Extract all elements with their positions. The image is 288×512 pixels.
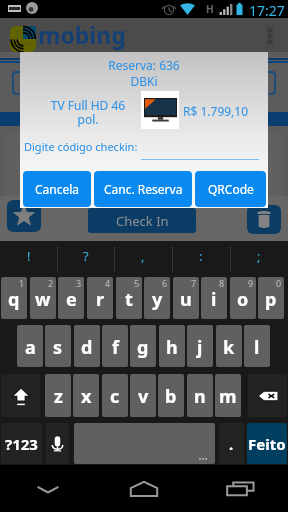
staticText: Feito bbox=[248, 434, 286, 454]
button[interactable]: m bbox=[215, 374, 241, 417]
button[interactable]: q bbox=[1, 277, 27, 319]
staticText: g bbox=[137, 335, 149, 360]
button[interactable]: a bbox=[17, 325, 43, 367]
button[interactable]: QRCode bbox=[195, 171, 266, 207]
staticText: Reserva: 636 bbox=[20, 57, 268, 73]
staticText: H bbox=[206, 2, 214, 16]
staticText: 0 bbox=[276, 277, 282, 289]
staticText: , bbox=[141, 247, 145, 265]
staticText: 7 bbox=[191, 277, 197, 289]
button[interactable]: Back bbox=[0, 465, 96, 512]
button[interactable]: : bbox=[172, 241, 230, 276]
button[interactable]: o bbox=[230, 277, 256, 319]
staticText: 8 bbox=[219, 277, 225, 289]
button[interactable]: Backspace bbox=[248, 374, 287, 417]
button[interactable]: h bbox=[159, 325, 185, 367]
staticText: i bbox=[211, 287, 217, 312]
staticText: ? bbox=[83, 247, 89, 265]
staticText: Check In bbox=[116, 212, 169, 230]
button[interactable]: l bbox=[244, 325, 270, 367]
button[interactable]: Check In bbox=[88, 208, 196, 233]
button[interactable]: c bbox=[102, 374, 128, 417]
button[interactable]: Favorite bbox=[7, 200, 41, 232]
button[interactable]: ? bbox=[57, 241, 114, 276]
button[interactable]: mobing bbox=[10, 20, 126, 51]
button[interactable]: n bbox=[187, 374, 213, 417]
staticText: b bbox=[165, 384, 177, 409]
button[interactable]: z bbox=[45, 374, 71, 417]
staticText: v bbox=[138, 384, 149, 409]
button[interactable]: Recent apps bbox=[192, 465, 288, 512]
button[interactable]: v bbox=[130, 374, 156, 417]
button[interactable]: Canc. Reserva bbox=[94, 171, 192, 207]
button[interactable]: j bbox=[187, 325, 213, 367]
staticText: q bbox=[8, 287, 20, 312]
staticText: QRCode bbox=[208, 181, 254, 197]
button[interactable]: Shift bbox=[1, 374, 40, 417]
staticText: : bbox=[199, 247, 203, 265]
staticText: d bbox=[81, 335, 93, 360]
staticText: TV Full HD 46 pol. bbox=[28, 97, 148, 128]
button[interactable]: t bbox=[116, 277, 142, 319]
button[interactable]: Voice input bbox=[46, 423, 69, 464]
button[interactable]: Cancela bbox=[23, 171, 91, 207]
staticText: f bbox=[112, 335, 119, 360]
staticText: 1 bbox=[19, 277, 25, 289]
button[interactable]: f bbox=[102, 325, 128, 367]
staticText: m bbox=[219, 384, 237, 409]
staticText: c bbox=[110, 384, 120, 409]
button[interactable]: p bbox=[258, 277, 284, 319]
staticText: w bbox=[35, 287, 51, 312]
button[interactable]: Feito bbox=[247, 423, 287, 464]
button[interactable]: w bbox=[30, 277, 56, 319]
button[interactable]: ?123 bbox=[1, 423, 42, 464]
button[interactable]: g bbox=[130, 325, 156, 367]
button[interactable]: b bbox=[158, 374, 184, 417]
staticText: r bbox=[96, 287, 105, 312]
button[interactable]: Space bbox=[74, 423, 215, 464]
staticText: Digite código checkin: bbox=[24, 139, 138, 154]
staticText: p bbox=[265, 287, 277, 312]
button[interactable]: Home bbox=[96, 465, 192, 512]
staticText: t bbox=[125, 287, 133, 312]
staticText: selecionar oferta bbox=[55, 112, 142, 126]
staticText: e bbox=[66, 287, 77, 312]
button[interactable]: More options bbox=[266, 26, 274, 44]
staticText: . bbox=[229, 434, 234, 454]
button[interactable]: , bbox=[114, 241, 172, 276]
staticText: o bbox=[237, 287, 249, 312]
staticText: 4 bbox=[105, 277, 111, 289]
staticText: 2 bbox=[48, 277, 54, 289]
staticText: ! bbox=[27, 247, 31, 265]
button[interactable]: x bbox=[73, 374, 99, 417]
button[interactable]: . bbox=[219, 423, 244, 464]
staticText: 6 bbox=[162, 277, 168, 289]
button[interactable]: Delete bbox=[247, 205, 281, 234]
staticText: n bbox=[194, 384, 206, 409]
staticText: 3 bbox=[76, 277, 82, 289]
staticText: DBKi bbox=[20, 73, 268, 89]
staticText: ?123 bbox=[5, 434, 38, 454]
staticText: a bbox=[25, 335, 36, 360]
staticText: 17:27 bbox=[249, 1, 285, 19]
button[interactable]: d bbox=[74, 325, 100, 367]
button[interactable]: i bbox=[201, 277, 227, 319]
staticText: R$ 1.799,10 bbox=[183, 103, 249, 119]
staticText: u bbox=[180, 287, 192, 312]
button[interactable]: e bbox=[58, 277, 84, 319]
staticText: Canc. Reserva bbox=[104, 181, 183, 197]
button[interactable]: s bbox=[45, 325, 71, 367]
button[interactable]: r bbox=[87, 277, 113, 319]
staticText: j bbox=[197, 335, 203, 360]
staticText: ; bbox=[257, 247, 261, 265]
button[interactable]: u bbox=[173, 277, 199, 319]
staticText: 5 bbox=[134, 277, 140, 289]
staticText: l bbox=[254, 335, 260, 360]
button[interactable]: ! bbox=[0, 241, 57, 276]
staticText: Cancela bbox=[35, 181, 80, 197]
button[interactable]: y bbox=[144, 277, 170, 319]
button[interactable]: ; bbox=[230, 241, 288, 276]
button[interactable]: k bbox=[216, 325, 242, 367]
staticText: 9 bbox=[248, 277, 254, 289]
staticText: z bbox=[54, 384, 63, 409]
